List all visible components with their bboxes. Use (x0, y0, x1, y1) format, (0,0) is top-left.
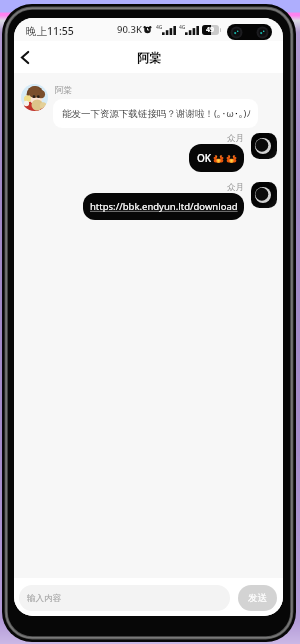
button[interactable]: 输入内容 (19, 585, 230, 611)
staticText: https://bbk.endyun.ltd/download (90, 200, 238, 213)
staticText: 90.3K (117, 23, 142, 36)
staticText: OK (197, 151, 212, 165)
button[interactable]: https://bbk.endyun.ltd/download (83, 193, 244, 220)
button[interactable]: Back (14, 42, 40, 72)
button[interactable]: 发送 (238, 585, 277, 611)
button[interactable]: 能发一下资源下载链接吗？谢谢啦！(｡･ω･｡)ﾉ (53, 99, 258, 128)
button[interactable]: OK (189, 144, 244, 172)
staticText: 4G (156, 24, 163, 31)
staticText: 4G (179, 24, 186, 31)
staticText: 晚上11:55 (26, 24, 74, 38)
staticText: 能发一下资源下载链接吗？谢谢啦！(｡･ω･｡)ﾉ (62, 107, 252, 120)
staticText: 输入内容 (27, 593, 61, 604)
staticText: 众月 (227, 182, 244, 193)
staticText: 发送 (248, 592, 267, 604)
staticText: 阿棠 (137, 50, 161, 65)
staticText: 49 (206, 25, 215, 35)
staticText: 阿棠 (55, 85, 72, 96)
staticText: 众月 (227, 133, 244, 144)
